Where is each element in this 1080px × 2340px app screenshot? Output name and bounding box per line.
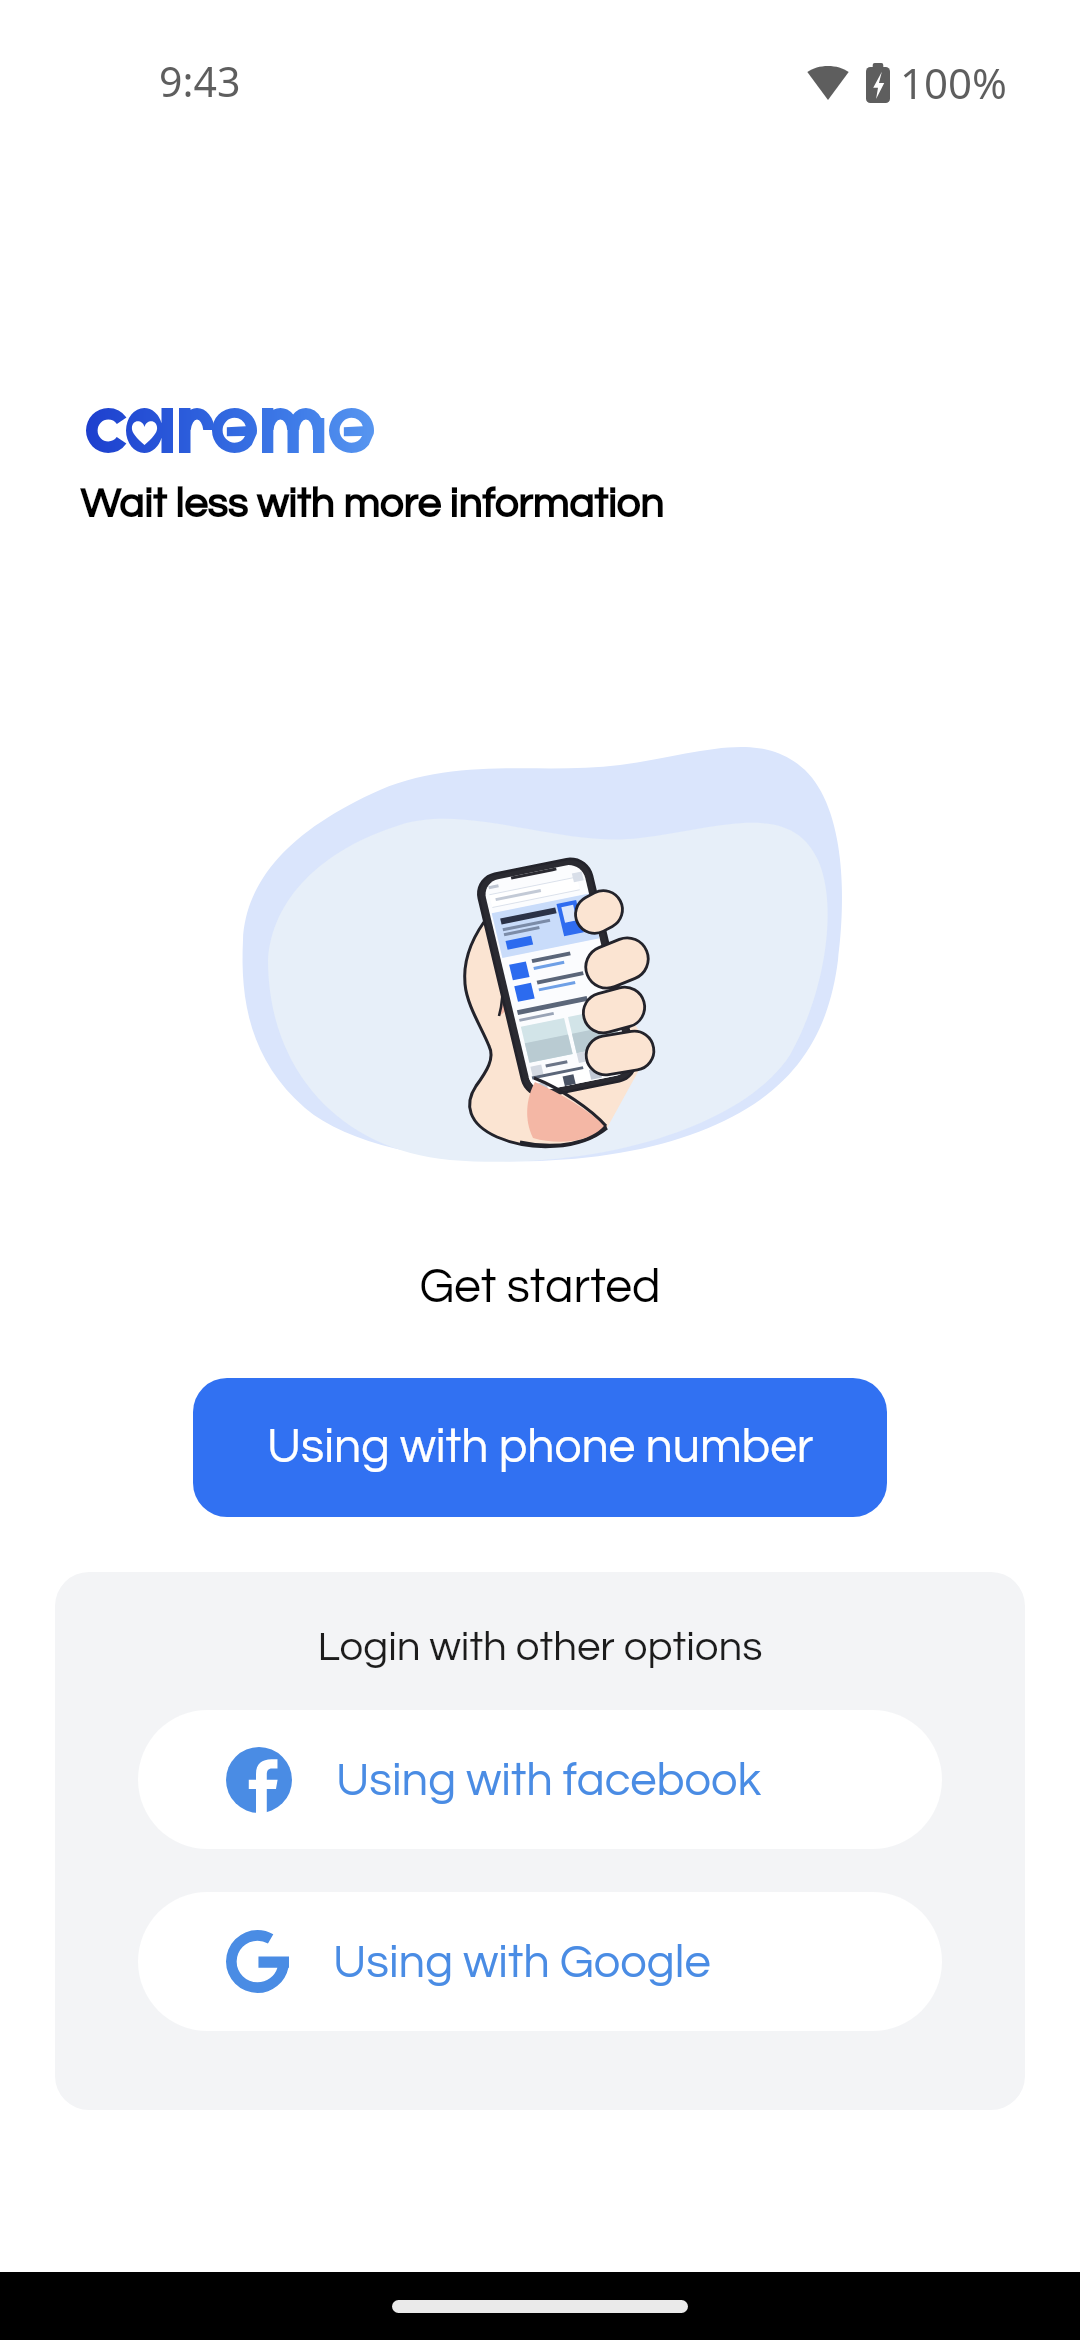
- button[interactable]: Using with Google: [138, 1892, 942, 2031]
- staticText: 9:43: [159, 53, 241, 109]
- staticText: Using with Google: [333, 1938, 711, 1986]
- button[interactable]: Using with phone number: [193, 1378, 887, 1517]
- staticText: Login with other options: [55, 1626, 1025, 1669]
- staticText: 100%: [900, 54, 1007, 111]
- button[interactable]: Using with facebook: [138, 1710, 942, 1849]
- staticText: Using with facebook: [336, 1756, 762, 1804]
- staticText: Get started: [0, 1263, 1080, 1312]
- staticText: Using with phone number: [267, 1423, 814, 1472]
- staticText: Wait less with more information: [80, 483, 664, 526]
